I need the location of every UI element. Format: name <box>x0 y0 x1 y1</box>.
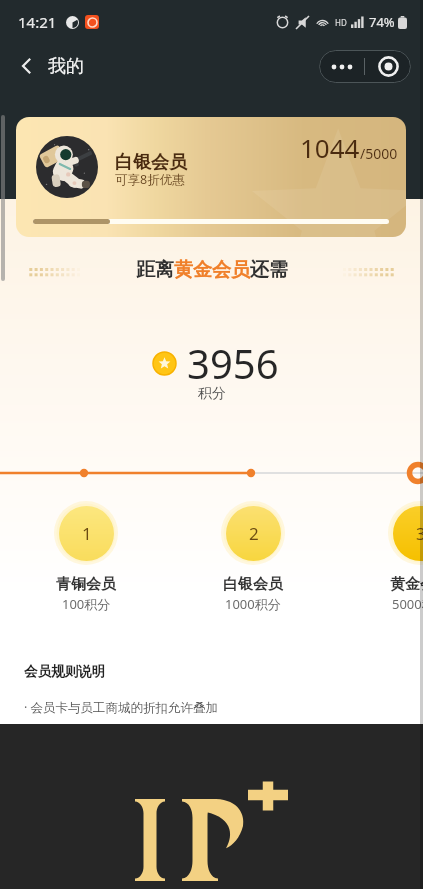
button[interactable]: 3 <box>360 501 423 613</box>
staticText: 积分 <box>198 385 226 403</box>
staticText: 14:21 <box>18 12 57 32</box>
staticText: 我的 <box>48 55 84 78</box>
staticText: 青铜会员 <box>56 575 116 594</box>
button[interactable]: More options <box>319 50 364 83</box>
staticText: 会员规则说明 <box>24 663 105 680</box>
staticText: 5000积分 <box>392 595 423 613</box>
staticText: 黄金会员 <box>390 575 423 594</box>
staticText: 100积分 <box>62 595 111 613</box>
button[interactable]: 1 <box>26 501 146 613</box>
button[interactable]: Close mini program <box>365 50 411 83</box>
staticText: 1000积分 <box>225 595 281 613</box>
staticText: 距离黄金会员还需 <box>136 258 288 282</box>
staticText: 白银会员 <box>223 575 283 594</box>
staticText: HD <box>335 17 347 28</box>
staticText: 2 <box>249 522 259 545</box>
staticText: 1 <box>82 522 92 545</box>
button[interactable]: 2 <box>193 501 313 613</box>
staticText: 74% <box>369 13 395 31</box>
staticText: 3 <box>416 522 423 545</box>
staticText: 1044 <box>300 130 360 165</box>
staticText: 3956 <box>187 336 279 390</box>
staticText: /5000 <box>360 144 398 163</box>
staticText: 可享8折优惠 <box>115 171 185 188</box>
button[interactable]: 白银会员 <box>16 117 406 237</box>
button[interactable]: Back <box>10 49 44 83</box>
staticText: · 会员卡与员工商城的折扣允许叠加 <box>24 699 219 716</box>
staticText: 白银会员 <box>115 151 187 174</box>
